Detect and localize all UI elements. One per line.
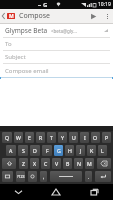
button[interactable]: C <box>41 158 50 169</box>
staticText: K <box>90 147 94 154</box>
button[interactable]: P <box>102 132 111 143</box>
staticText: ?123 <box>17 174 25 179</box>
button[interactable]: I <box>80 132 89 143</box>
button[interactable]: Home <box>37 184 75 200</box>
button[interactable]: Emoji <box>28 171 37 182</box>
button[interactable]: Glympse Beta <box>0 24 113 37</box>
staticText: P <box>105 134 109 141</box>
button[interactable]: To <box>0 38 113 50</box>
staticText: Glympse Beta <box>5 26 48 35</box>
staticText: L <box>101 147 104 154</box>
staticText: T <box>50 134 53 141</box>
button[interactable]: ?123 <box>16 171 25 182</box>
staticText: To <box>5 40 12 48</box>
button[interactable]: G <box>54 145 63 156</box>
staticText: M <box>9 13 14 19</box>
button[interactable]: M <box>85 158 94 169</box>
button[interactable]: K <box>87 145 96 156</box>
staticText: J <box>80 147 82 154</box>
staticText: U <box>72 134 76 141</box>
button[interactable]: V <box>52 158 61 169</box>
staticText: Compose email <box>5 67 49 75</box>
staticText: Y <box>61 134 64 141</box>
staticText: Q <box>5 134 10 141</box>
staticText: X <box>33 160 37 167</box>
staticText: 10:19 <box>98 1 111 8</box>
button[interactable]: A <box>6 145 16 156</box>
button[interactable]: N <box>74 158 83 169</box>
button[interactable]: E <box>25 132 34 143</box>
button[interactable]: S <box>18 145 28 156</box>
button[interactable]: Enter <box>95 171 111 182</box>
button[interactable]: Z <box>19 158 28 169</box>
button[interactable]: T <box>47 132 56 143</box>
button[interactable]: . <box>85 171 92 182</box>
button[interactable]: Space <box>50 171 82 182</box>
button[interactable]: B <box>63 158 72 169</box>
staticText: M <box>87 160 92 167</box>
button[interactable]: Symbols <box>2 171 13 182</box>
staticText: B <box>66 160 70 167</box>
button[interactable]: O <box>91 132 100 143</box>
staticText: C <box>44 160 48 167</box>
staticText: <beta@glympse.com> <box>51 28 77 34</box>
staticText: F <box>46 147 49 154</box>
button[interactable]: F <box>42 145 52 156</box>
staticText: N <box>77 160 81 167</box>
staticText: Compose <box>19 11 51 21</box>
button[interactable]: More options <box>101 9 113 23</box>
button[interactable]: Shift <box>2 158 16 169</box>
staticText: G <box>57 147 61 154</box>
button[interactable]: R <box>36 132 45 143</box>
button[interactable]: Back <box>0 184 37 200</box>
button[interactable]: Backspace <box>97 158 111 169</box>
staticText: , <box>43 173 45 180</box>
staticText: W <box>16 134 21 141</box>
staticText: R <box>39 134 43 141</box>
button[interactable]: H <box>65 145 74 156</box>
staticText: I <box>84 134 86 141</box>
button[interactable]: Recent apps <box>75 184 113 200</box>
staticText: O <box>93 134 98 141</box>
button[interactable]: Send <box>85 9 101 23</box>
staticText: E <box>28 134 31 141</box>
staticText: D <box>33 147 37 154</box>
button[interactable]: Y <box>58 132 67 143</box>
button[interactable]: J <box>76 145 85 156</box>
button[interactable]: Q <box>2 132 12 143</box>
staticText: G <box>43 1 48 9</box>
staticText: Subject <box>5 53 26 61</box>
button[interactable]: D <box>30 145 40 156</box>
button[interactable]: Compose email <box>0 64 113 77</box>
staticText: S <box>22 147 25 154</box>
staticText: V <box>55 160 59 167</box>
staticText: H <box>68 147 72 154</box>
staticText: A <box>9 147 13 154</box>
button[interactable]: , <box>40 171 47 182</box>
button[interactable]: W <box>14 132 23 143</box>
button[interactable]: Navigate up <box>0 9 17 23</box>
button[interactable]: Subject <box>0 51 113 63</box>
button[interactable]: U <box>69 132 78 143</box>
button[interactable]: X <box>30 158 39 169</box>
staticText: . <box>88 173 90 180</box>
staticText: Z <box>22 160 25 167</box>
button[interactable]: L <box>98 145 107 156</box>
